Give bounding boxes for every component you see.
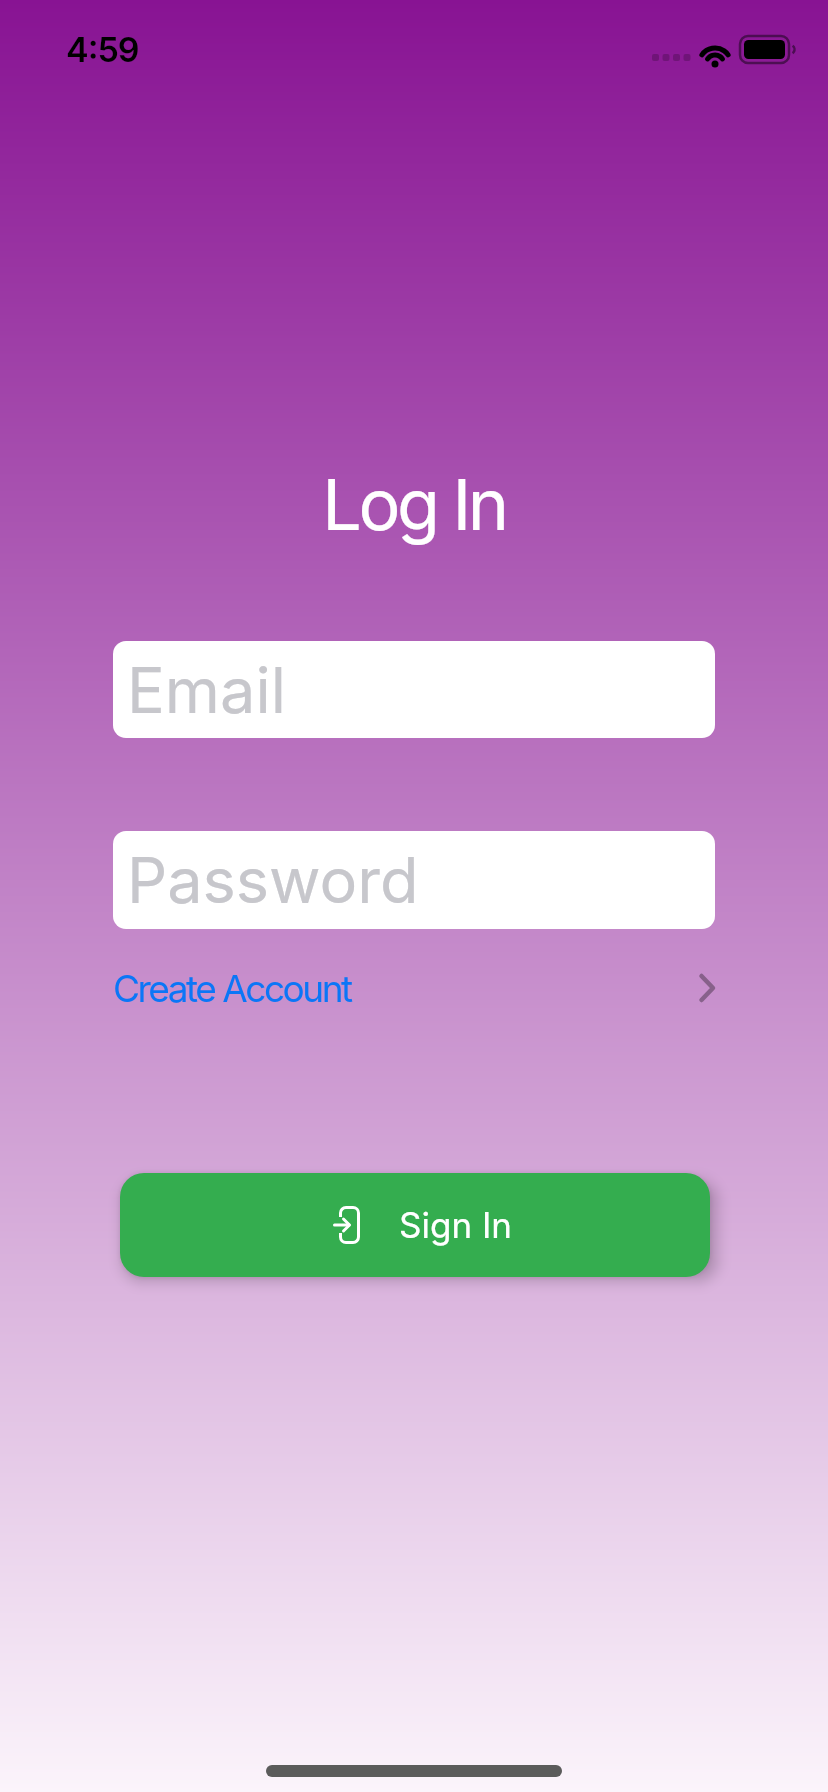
staticText: Create Account (113, 966, 351, 1011)
staticText: Sign In (399, 1204, 512, 1246)
staticText: Email (127, 652, 286, 728)
staticText: Log In (0, 462, 828, 547)
button[interactable]: Password (113, 831, 715, 929)
button[interactable]: Create Account (113, 958, 716, 1018)
button[interactable]: Email (113, 641, 715, 738)
staticText: Password (127, 842, 419, 918)
button[interactable]: Sign In (120, 1173, 710, 1277)
staticText: 4:59 (66, 29, 139, 70)
